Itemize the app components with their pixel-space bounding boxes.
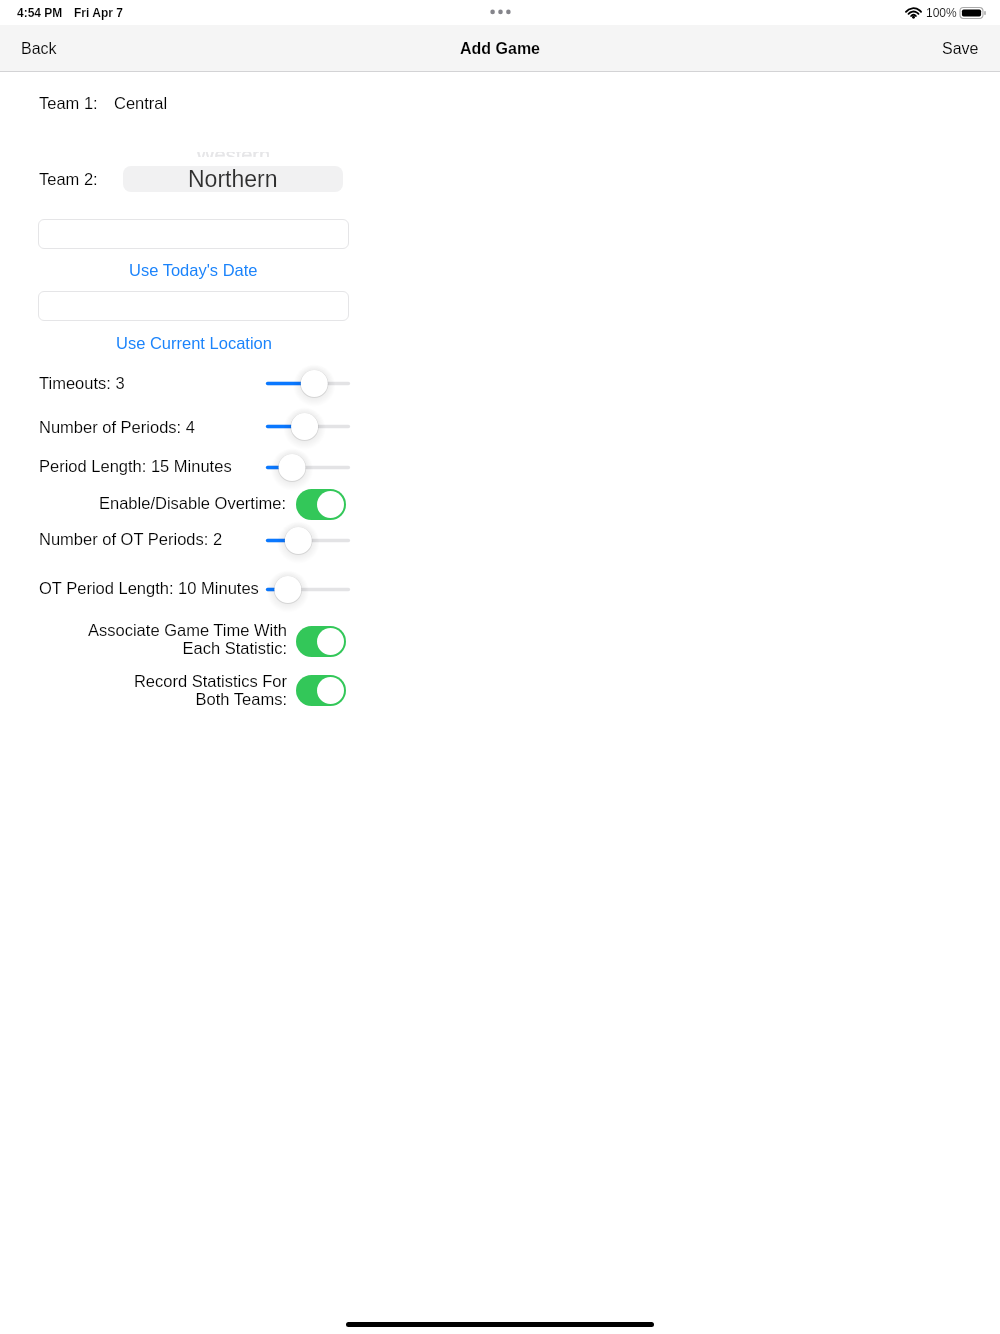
- button[interactable]: Record statistics for both teams: [296, 675, 346, 706]
- button[interactable]: Date: [38, 219, 349, 249]
- button[interactable]: Enable/Disable Overtime: [296, 489, 346, 520]
- button[interactable]: Use Current Location: [38, 331, 349, 355]
- staticText: Add Game: [460, 40, 541, 58]
- button[interactable]: Use Today's Date: [38, 258, 349, 282]
- staticText: 4:54 PM: [17, 6, 63, 19]
- staticText: 100%: [926, 6, 957, 19]
- staticText: Record Statistics For: [133, 672, 287, 690]
- staticText: Western: [196, 152, 271, 157]
- button[interactable]: Associate game time with each statistic: [296, 626, 346, 657]
- staticText: Both Teams:: [195, 690, 287, 708]
- button[interactable]: Number of periods: [266, 411, 350, 442]
- staticText: OT Period Length: 10 Minutes: [39, 579, 259, 597]
- staticText: Use Today's Date: [129, 261, 258, 279]
- staticText: Number of Periods: 4: [39, 418, 195, 436]
- button[interactable]: OT Period Length: 10 Minutes: [39, 575, 259, 601]
- staticText: Each Statistic:: [182, 639, 287, 657]
- staticText: Northern: [188, 166, 278, 192]
- staticText: Central: [114, 94, 168, 112]
- button[interactable]: Team 2 selected: [123, 166, 343, 192]
- button[interactable]: Save: [924, 28, 1000, 70]
- button[interactable]: Period Length: 15 Minutes: [39, 453, 232, 479]
- staticText: Associate Game Time With: [88, 621, 287, 639]
- staticText: Team 1:: [39, 94, 98, 112]
- button[interactable]: Number of OT periods: [266, 525, 350, 556]
- button[interactable]: Timeouts: 3: [39, 370, 125, 396]
- staticText: Team 2:: [39, 170, 98, 188]
- button[interactable]: Back: [0, 28, 75, 70]
- staticText: Save: [942, 40, 979, 58]
- button[interactable]: OT period length: [266, 574, 350, 605]
- button[interactable]: Team 2 picker: [123, 152, 343, 165]
- staticText: Number of OT Periods: 2: [39, 530, 223, 548]
- staticText: Use Current Location: [116, 334, 272, 352]
- staticText: Fri Apr 7: [74, 6, 123, 19]
- staticText: Timeouts: 3: [39, 374, 125, 392]
- button[interactable]: Enable/Disable Overtime:: [39, 490, 287, 516]
- button[interactable]: Timeouts: [266, 368, 350, 399]
- button[interactable]: Location: [38, 291, 349, 321]
- staticText: Period Length: 15 Minutes: [39, 457, 232, 475]
- button[interactable]: Period length: [266, 452, 350, 483]
- staticText: Enable/Disable Overtime:: [99, 494, 287, 512]
- button[interactable]: Associate Game Time With: [39, 621, 287, 657]
- staticText: Back: [21, 40, 57, 58]
- button[interactable]: Record Statistics For: [39, 672, 287, 708]
- button[interactable]: Number of OT Periods: 2: [39, 526, 223, 552]
- button[interactable]: Number of Periods: 4: [39, 414, 195, 440]
